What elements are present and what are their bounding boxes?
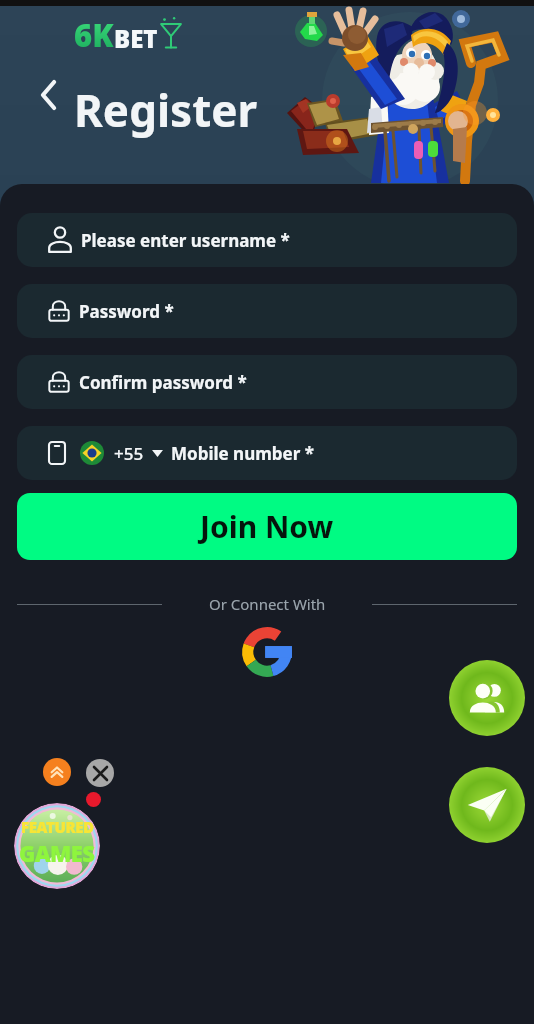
staticText: Mobile number * (171, 442, 314, 465)
staticText: Please enter username * (81, 229, 290, 252)
staticText: Join Now (200, 506, 334, 547)
staticText: +55 (114, 442, 144, 465)
button[interactable]: Close (86, 759, 114, 787)
button[interactable]: +55 (17, 426, 517, 480)
button[interactable]: Sign in with Google (242, 627, 292, 677)
button[interactable]: Customer service (449, 660, 525, 736)
button[interactable]: Join Now (17, 493, 517, 560)
button[interactable]: Password * (17, 284, 517, 338)
button[interactable]: Featured Games (14, 803, 100, 889)
staticText: 6K (74, 14, 114, 56)
button[interactable]: Expand (43, 758, 71, 786)
button[interactable]: Back (26, 72, 72, 118)
staticText: Or Connect With (209, 594, 326, 614)
staticText: Confirm password * (79, 371, 247, 394)
staticText: FEATURED (21, 817, 94, 837)
button[interactable]: Please enter username * (17, 213, 517, 267)
staticText: GAMES (19, 838, 95, 868)
button[interactable]: Confirm password * (17, 355, 517, 409)
staticText: Password * (79, 300, 174, 323)
button[interactable]: Telegram (449, 767, 525, 843)
staticText: BET (114, 22, 158, 55)
staticText: Register (74, 80, 258, 140)
